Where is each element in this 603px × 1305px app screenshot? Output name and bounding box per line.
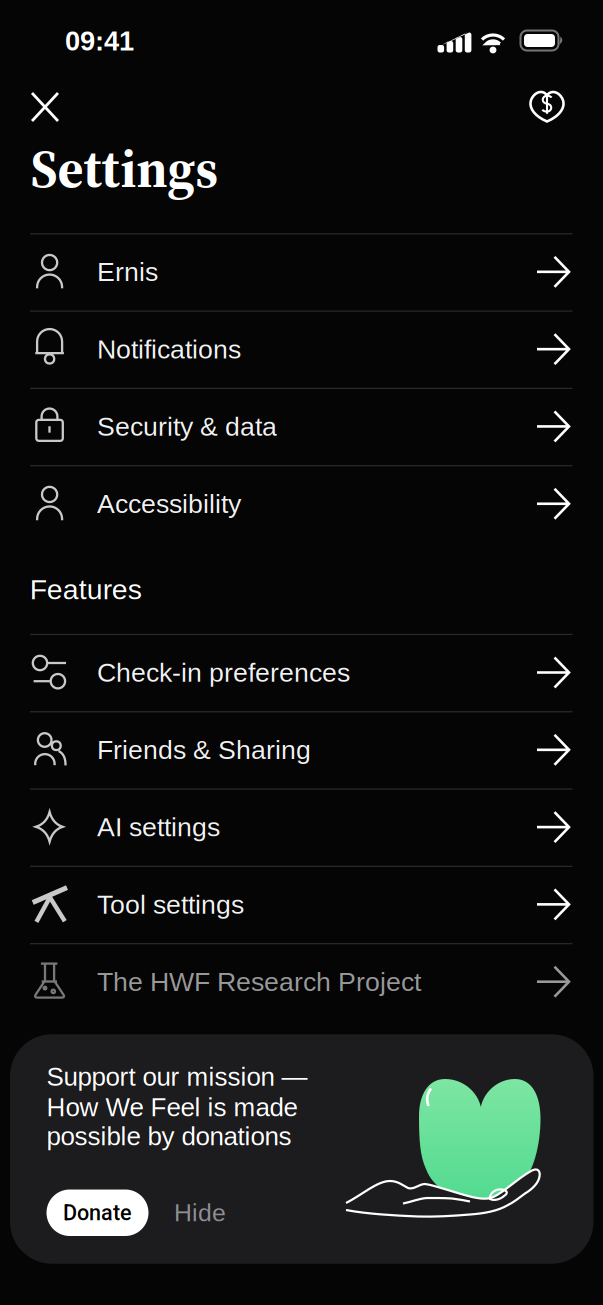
staticText: Notifications [97,334,241,364]
button[interactable] [524,85,570,129]
staticText: Tool settings [97,889,244,919]
button[interactable]: AI settings [0,788,603,866]
staticText: 09:41 [65,26,134,56]
button[interactable]: Notifications [0,310,603,388]
staticText: Friends & Sharing [97,735,311,765]
button[interactable]: Ernis [0,233,603,310]
button[interactable]: Check-in preferences [0,634,603,711]
staticText: Settings [30,132,218,205]
staticText: Security & data [97,412,277,441]
staticText: Support our mission — [46,1062,307,1091]
staticText: AI settings [97,812,220,842]
button[interactable] [23,84,67,130]
staticText: The HWF Research Project [97,967,421,997]
staticText: Accessibility [97,489,241,519]
button[interactable]: Donate [46,1189,148,1236]
staticText: Ernis [97,257,158,287]
button[interactable]: Tool settings [0,866,603,943]
staticText: possible by donations [46,1122,291,1151]
staticText: Donate [63,1200,132,1225]
button[interactable]: Hide [160,1190,240,1236]
staticText: How We Feel is made [46,1093,297,1122]
staticText: Features [30,574,142,605]
button[interactable]: The HWF Research Project [0,943,603,1020]
button[interactable]: Accessibility [0,465,603,542]
staticText: Hide [174,1199,226,1227]
button[interactable]: Security & data [0,388,603,465]
staticText: Check-in preferences [97,658,350,687]
button[interactable]: Friends & Sharing [0,711,603,788]
